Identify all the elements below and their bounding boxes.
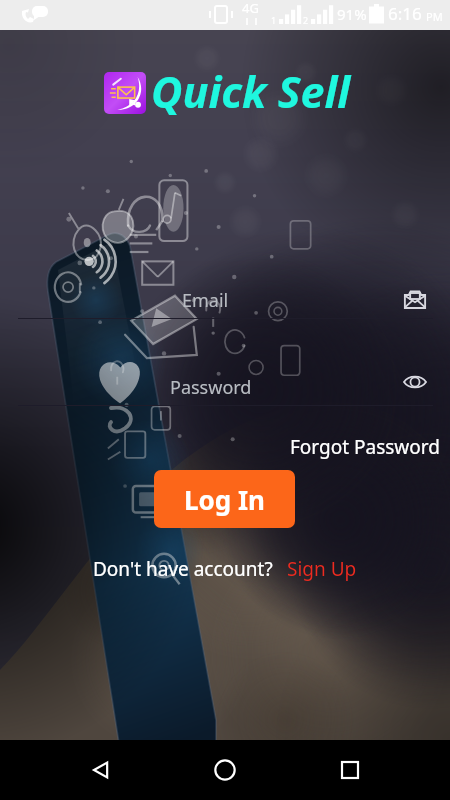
- staticText: Don't have account?: [93, 556, 273, 582]
- button[interactable]: Recents: [326, 746, 374, 794]
- button[interactable]: Show password: [403, 373, 427, 391]
- button[interactable]: Log In: [154, 470, 295, 528]
- staticText: Email: [182, 288, 229, 313]
- staticText: Sign Up: [287, 556, 357, 582]
- other: Email: [404, 289, 426, 309]
- button[interactable]: Home: [201, 746, 249, 794]
- staticText: 2: [303, 14, 309, 26]
- button[interactable]: Sign Up: [273, 556, 357, 582]
- button[interactable]: Email: [0, 278, 450, 318]
- staticText: 6:16: [388, 2, 422, 25]
- staticText: PM: [426, 9, 443, 24]
- button[interactable]: Password: [0, 365, 450, 405]
- staticText: 91%: [337, 4, 367, 24]
- staticText: Quick Sell: [151, 62, 351, 121]
- staticText: Forgot Password: [290, 434, 440, 460]
- staticText: 4G: [242, 0, 259, 17]
- staticText: Log In: [184, 482, 265, 517]
- button[interactable]: Forgot Password: [280, 430, 450, 464]
- button[interactable]: Back: [77, 746, 125, 794]
- staticText: Password: [170, 375, 252, 400]
- staticText: 1: [271, 14, 277, 26]
